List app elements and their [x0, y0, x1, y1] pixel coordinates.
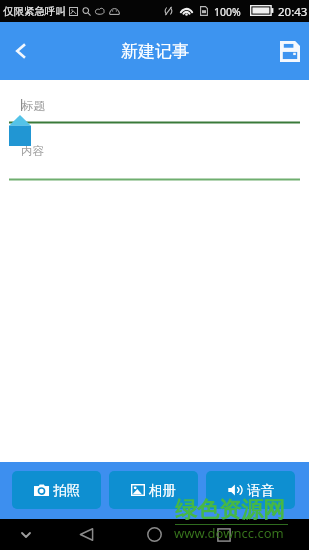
- button[interactable]: 相册: [109, 471, 198, 509]
- button[interactable]: 语音: [206, 471, 295, 509]
- button[interactable]: Back: [69, 519, 104, 550]
- staticText: 绿色资源网: [175, 496, 285, 524]
- staticText: 20:43: [278, 4, 308, 20]
- staticText: 拍照: [53, 482, 80, 499]
- staticText: 仅限紧急呼叫: [3, 5, 66, 18]
- staticText: 新建记事: [121, 41, 189, 62]
- button[interactable]: Hide keyboard: [8, 519, 43, 550]
- staticText: 相册: [149, 482, 176, 499]
- staticText: www.downcc.com: [174, 524, 284, 542]
- button[interactable]: Save: [271, 22, 309, 80]
- staticText: 100%: [214, 5, 241, 19]
- button[interactable]: 拍照: [12, 471, 101, 509]
- button[interactable]: Back: [0, 22, 41, 80]
- staticText: 语音: [247, 482, 274, 499]
- button[interactable]: 内容: [21, 144, 44, 158]
- button[interactable]: 标题: [22, 99, 45, 113]
- button[interactable]: Recents: [206, 519, 241, 550]
- button[interactable]: Home: [137, 519, 172, 550]
